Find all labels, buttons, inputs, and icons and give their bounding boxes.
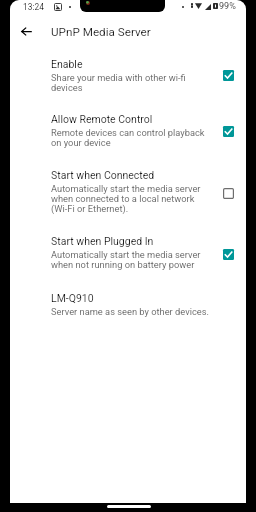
staticText: UPnP Media Server <box>51 25 151 39</box>
button[interactable]: Enable <box>10 58 246 92</box>
button[interactable]: Start when Connected <box>10 169 246 216</box>
staticText: Automatically start the media server whe… <box>51 183 213 214</box>
staticText: Enable <box>51 58 83 70</box>
button[interactable]: Allow Remote Control <box>10 113 246 148</box>
staticText: Allow Remote Control <box>51 113 153 125</box>
staticText: Remote devices can control playback on y… <box>51 127 213 148</box>
staticText: Start when Connected <box>51 169 155 181</box>
button[interactable]: Enable <box>215 62 241 88</box>
staticText: Server name as seen by other devices. <box>51 306 210 317</box>
button[interactable]: Back <box>15 20 38 43</box>
staticText: Automatically start the media server whe… <box>51 249 213 270</box>
staticText: 99% <box>219 1 236 12</box>
button[interactable]: Start when Plugged In <box>10 235 246 272</box>
staticText: 13:24 <box>23 2 44 12</box>
button[interactable]: Start when Connected <box>215 180 241 206</box>
button[interactable]: LM-Q910 <box>10 292 246 317</box>
button[interactable]: Start when Plugged In <box>215 241 241 267</box>
button[interactable]: Allow Remote Control <box>215 118 241 144</box>
staticText: Share your media with other wi-fi device… <box>51 72 213 93</box>
staticText: LM-Q910 <box>51 292 94 304</box>
staticText: Start when Plugged In <box>51 235 154 247</box>
